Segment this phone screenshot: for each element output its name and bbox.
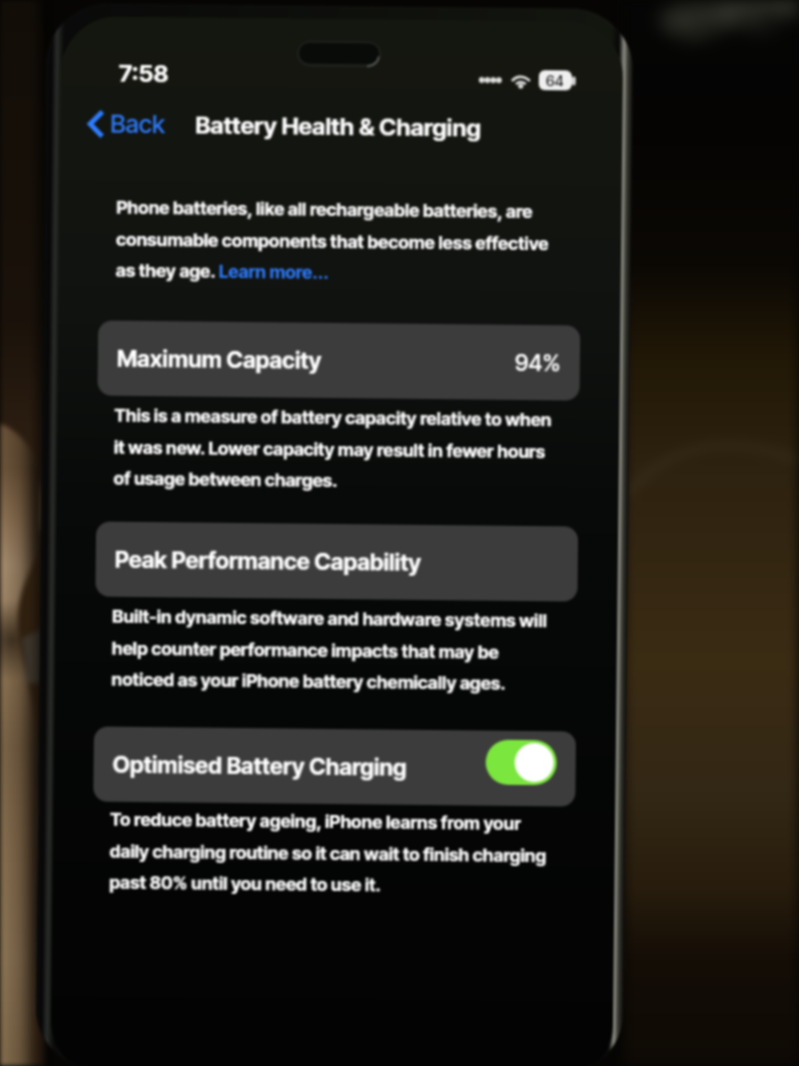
button[interactable]: Optimised Battery Charging: [93, 726, 576, 806]
staticText: 94%: [515, 349, 561, 377]
button[interactable]: Peak Performance Capability: [95, 521, 578, 601]
staticText: Optimised Battery Charging: [112, 751, 408, 782]
staticText: Phone batteries, like all rechargeable b…: [116, 197, 550, 285]
button[interactable]: Maximum Capacity: [97, 320, 580, 400]
staticText: 7:58: [119, 59, 169, 88]
staticText: This is a measure of battery capacity re…: [113, 405, 552, 493]
staticText: Back: [110, 109, 165, 139]
button[interactable]: Back: [82, 100, 172, 147]
staticText: 64: [546, 71, 565, 89]
button[interactable]: Optimised Battery Charging toggle: [485, 740, 557, 785]
staticText: Peak Performance Capability: [115, 546, 422, 577]
staticText: Battery Health & Charging: [195, 110, 481, 142]
staticText: Maximum Capacity: [117, 345, 322, 375]
staticText: Built-in dynamic software and hardware s…: [111, 606, 547, 694]
staticText: To reduce battery ageing, iPhone learns …: [109, 809, 547, 897]
